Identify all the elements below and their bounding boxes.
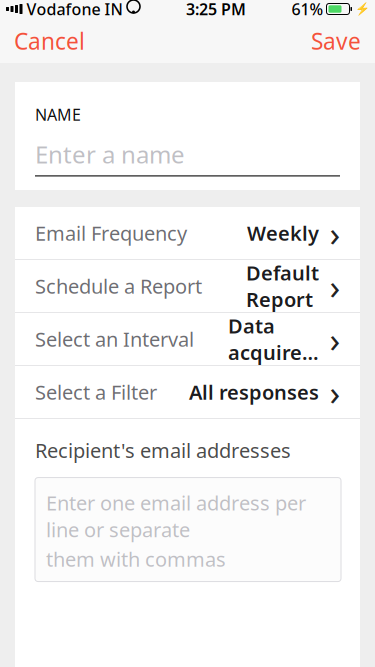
staticText: › xyxy=(329,369,340,415)
button[interactable]: Enter one email address per line or sepa… xyxy=(35,478,341,582)
staticText: 61% xyxy=(291,0,323,20)
staticText: › xyxy=(329,210,340,256)
button[interactable]: Select an Interval xyxy=(15,313,360,365)
staticText: Enter one email address per line or sepa… xyxy=(46,490,306,543)
staticText: Data acquire… xyxy=(228,312,319,365)
staticText: Select an Interval xyxy=(35,326,194,352)
staticText: › xyxy=(329,316,340,362)
button[interactable]: Email Frequency xyxy=(15,207,360,259)
button[interactable]: Cancel xyxy=(0,18,99,64)
button[interactable]: Schedule a Report xyxy=(15,260,360,312)
staticText: 3:25 PM xyxy=(186,0,246,20)
staticText: Enter a name xyxy=(35,138,185,170)
staticText: Weekly xyxy=(247,220,319,246)
button[interactable]: Save xyxy=(297,18,375,64)
button[interactable]: Select a Filter xyxy=(15,366,360,418)
staticText: Save xyxy=(311,26,361,56)
staticText: ⚡ xyxy=(355,2,370,16)
staticText: Default Report xyxy=(246,259,319,312)
staticText: Email Frequency xyxy=(35,220,187,246)
staticText: Cancel xyxy=(14,26,85,56)
staticText: them with commas xyxy=(46,546,226,572)
staticText: › xyxy=(329,263,340,309)
staticText: All responses xyxy=(189,379,319,405)
staticText: Select a Filter xyxy=(35,379,157,405)
staticText: Vodafone IN xyxy=(26,0,122,20)
staticText: Schedule a Report xyxy=(35,273,202,299)
staticText: NAME xyxy=(35,104,81,125)
staticText: Recipient's email addresses xyxy=(35,437,291,464)
